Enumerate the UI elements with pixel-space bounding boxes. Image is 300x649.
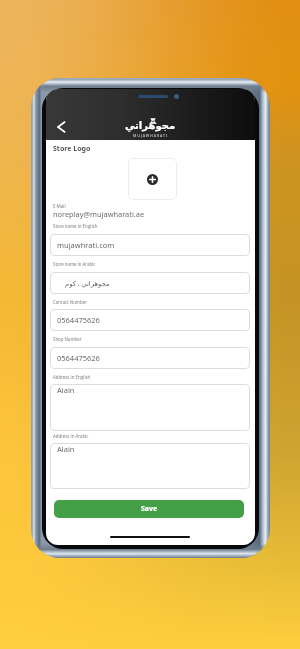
staticText: 0564475626 [57,315,100,325]
button[interactable]: Back [54,118,70,134]
button[interactable]: Add store logo [128,158,177,200]
button[interactable]: Save [54,500,244,518]
staticText: mujawhrati.com [57,240,115,250]
staticText: مجوهراتي . كوم [65,279,110,288]
staticText: E-Mail [53,203,66,209]
staticText: MUJAWHARATI [133,133,169,138]
staticText: Store name in English [53,223,98,229]
button[interactable]: 0564475626 [50,309,250,331]
staticText: Shop Number [53,336,82,342]
staticText: Store Logo [53,144,91,154]
staticText: 0564475626 [57,353,100,363]
button[interactable]: Alain [50,443,250,489]
staticText: Address in English [53,374,91,380]
staticText: مجوهراتي [125,120,176,132]
button[interactable]: مجوهراتي . كوم [50,272,250,294]
staticText: Store name in Arabic [53,261,96,267]
staticText: Address in Arabic [53,433,89,439]
button[interactable]: Alain [50,384,250,431]
staticText: Save [141,504,158,514]
button[interactable]: 0564475626 [50,347,250,369]
staticText: Contact Number [53,299,87,305]
button[interactable]: mujawhrati.com [50,234,250,256]
staticText: Alain [57,444,75,454]
staticText: noreplay@mujawharati.ae [53,209,145,219]
staticText: Alain [57,385,75,395]
